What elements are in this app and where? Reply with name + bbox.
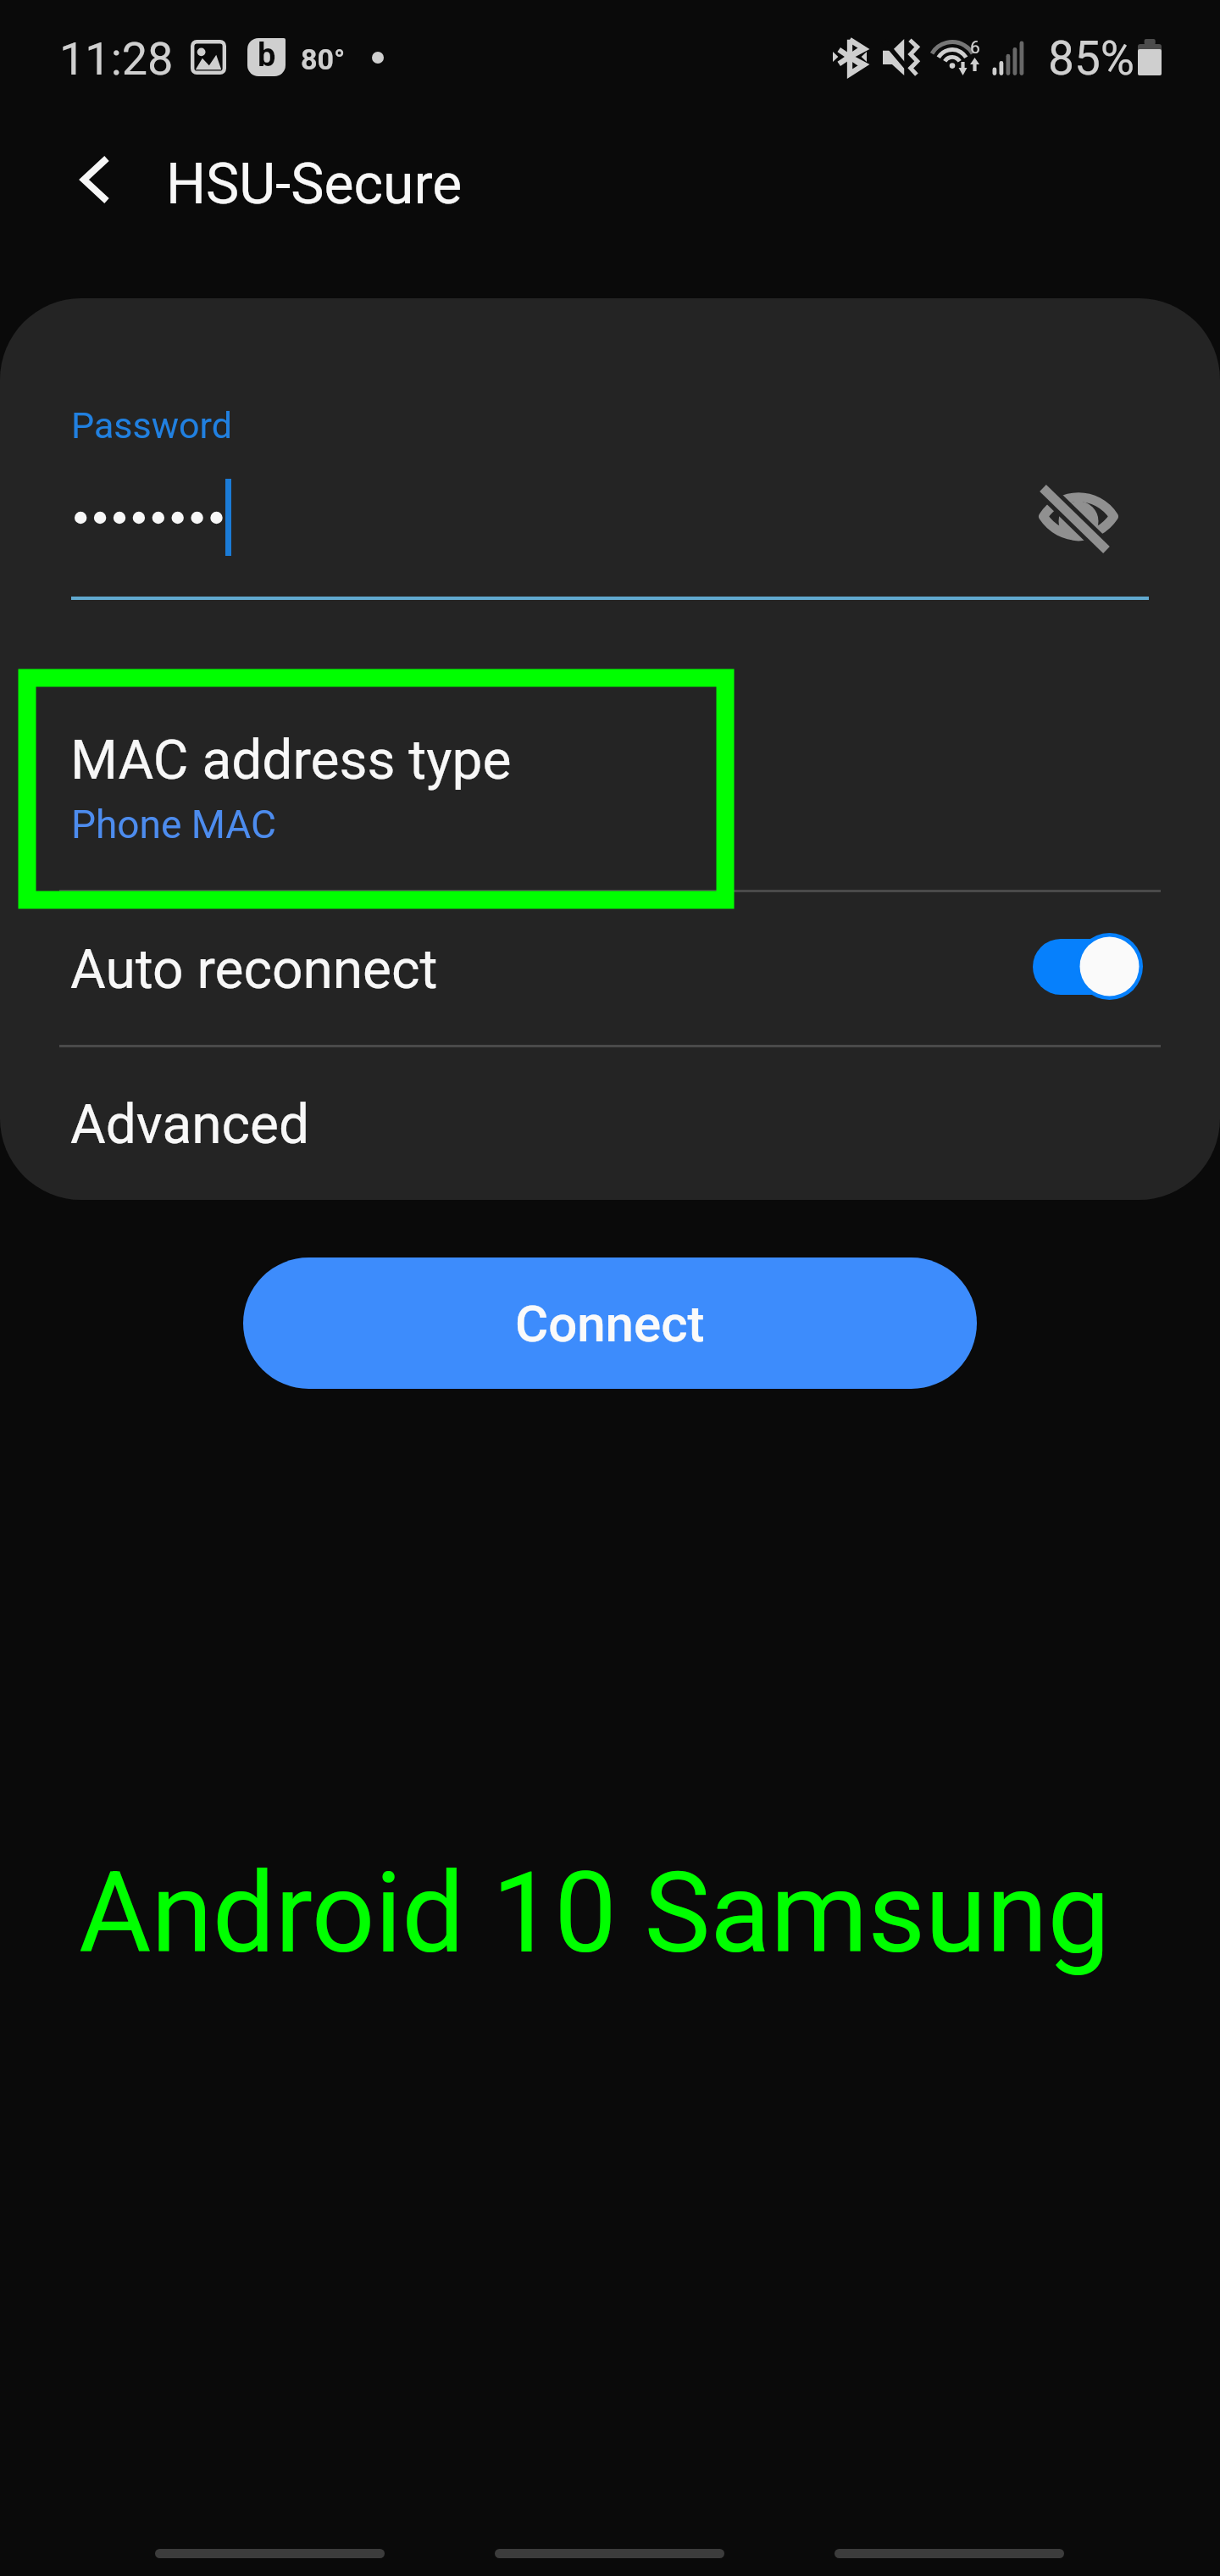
staticText: 11:28 [59,32,174,86]
staticText: HSU-Secure [166,152,463,217]
button[interactable]: Navigate up [47,132,141,227]
button[interactable]: Show password [1022,447,1135,561]
staticText: Connect [515,1294,705,1353]
staticText: 80° [301,42,346,76]
button[interactable]: MAC address type [0,669,1220,890]
button[interactable]: Auto reconnect [0,892,1220,1047]
staticText: Password [71,404,232,447]
button[interactable]: Advanced [0,1047,1220,1196]
staticText: Advanced [70,1093,310,1157]
staticText: b [258,38,276,75]
button[interactable]: Connect [243,1257,977,1389]
staticText: Auto reconnect [70,938,438,1002]
staticText: Phone MAC [71,802,277,847]
staticText: Android 10 Samsung [79,1848,1111,1979]
staticText: 6 [970,37,980,58]
staticText: MAC address type [70,729,512,792]
staticText: 85% [1048,31,1135,86]
